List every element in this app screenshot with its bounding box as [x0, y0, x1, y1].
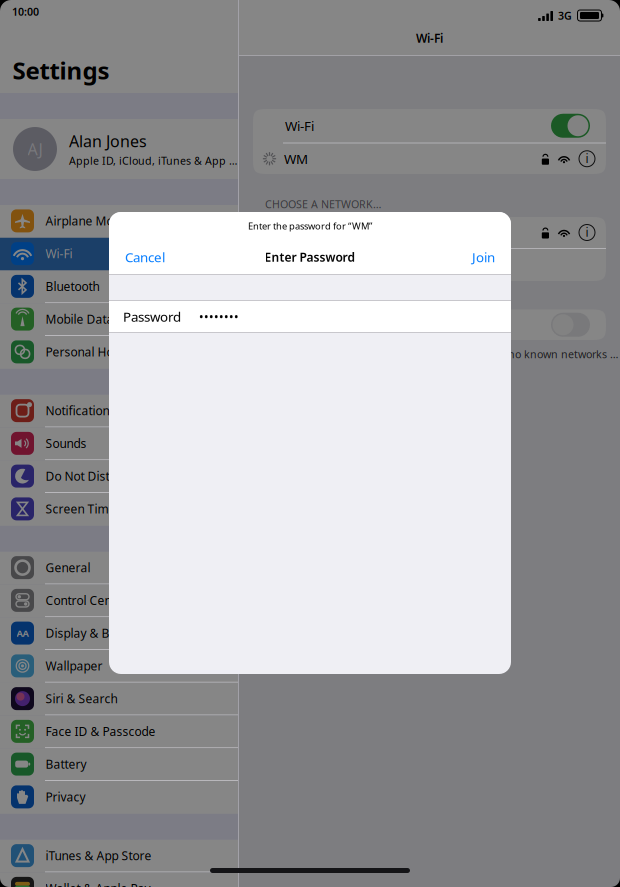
staticText: Sounds: [45, 435, 86, 451]
staticText: Wi-Fi: [416, 30, 443, 46]
staticText: 10:00: [12, 4, 39, 19]
staticText: AJ: [27, 138, 42, 160]
staticText: Wi-Fi: [45, 246, 72, 262]
staticText: Notifications: [45, 403, 115, 419]
button[interactable]: Cancel: [125, 240, 165, 274]
button[interactable]: Notifications: [0, 395, 238, 428]
staticText: i: [585, 224, 588, 240]
staticText: Mobile Data: [45, 311, 113, 327]
button[interactable]: Wallet & Apple Pay: [0, 872, 238, 887]
button[interactable]: AJ: [0, 119, 238, 179]
button[interactable]: i: [253, 217, 606, 248]
button[interactable]: Password: [109, 301, 511, 332]
button[interactable]: Screen Time: [0, 493, 238, 526]
staticText: Password: [123, 308, 181, 325]
staticText: Bluetooth: [45, 278, 99, 294]
staticText: Siri & Search: [45, 691, 117, 707]
staticText: Alan Jones: [69, 130, 147, 151]
button[interactable]: Wi-Fi: [0, 238, 238, 271]
staticText: ••••••••: [199, 308, 239, 324]
staticText: Join: [472, 248, 495, 266]
staticText: Wi-Fi: [285, 117, 314, 135]
button[interactable]: Personal Hotspot: [0, 336, 238, 369]
button[interactable]: Sounds: [0, 427, 238, 460]
button[interactable]: Join: [472, 240, 495, 274]
button[interactable]: iTunes & App Store: [0, 840, 238, 873]
staticText: 3G: [558, 8, 572, 23]
staticText: Known networks will be joined automatica…: [265, 347, 620, 361]
button[interactable]: General: [0, 552, 238, 585]
staticText: Control Centre: [45, 592, 127, 608]
staticText: Display & Brightness: [45, 625, 161, 641]
staticText: Airplane Mode: [45, 213, 127, 229]
staticText: CHOOSE A NETWORK…: [265, 197, 381, 211]
staticText: AA: [16, 627, 28, 639]
staticText: Settings: [12, 54, 109, 86]
button[interactable]: Privacy: [0, 781, 238, 814]
staticText: Privacy: [45, 789, 85, 805]
staticText: WM: [284, 150, 308, 168]
button[interactable]: Airplane Mode: [0, 205, 238, 238]
staticText: Wallet & Apple Pay: [45, 880, 150, 887]
button[interactable]: Siri & Search: [0, 683, 238, 716]
staticText: Screen Time: [45, 501, 115, 517]
button[interactable]: Mobile Data: [0, 303, 238, 336]
button[interactable]: Do Not Disturb: [0, 460, 238, 493]
button[interactable]: Battery: [0, 748, 238, 781]
staticText: Apple ID, iCloud, iTunes & App St...: [69, 153, 238, 168]
button[interactable]: Wallpaper: [0, 650, 238, 683]
staticText: Do Not Disturb: [45, 468, 128, 484]
button[interactable]: Bluetooth: [0, 270, 238, 303]
staticText: Cancel: [125, 248, 165, 266]
button[interactable]: Face ID & Passcode: [0, 715, 238, 748]
staticText: Wallpaper: [45, 658, 102, 674]
staticText: Enter Password: [264, 249, 355, 265]
staticText: General: [45, 560, 90, 576]
staticText: Battery: [45, 756, 86, 772]
button[interactable]: AA: [0, 617, 238, 650]
staticText: Personal Hotspot: [45, 344, 141, 360]
staticText: i: [585, 150, 588, 166]
button[interactable]: Control Centre: [0, 584, 238, 617]
staticText: Enter the password for “WM”: [248, 220, 372, 232]
staticText: iTunes & App Store: [45, 848, 151, 864]
staticText: Face ID & Passcode: [45, 723, 155, 739]
